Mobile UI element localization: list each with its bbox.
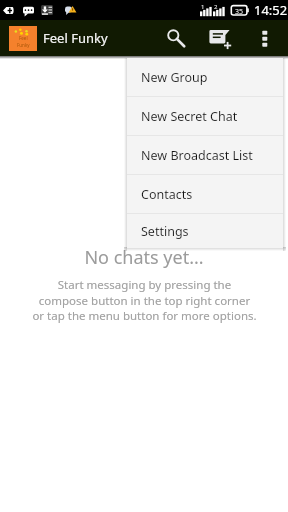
staticText: Start messaging by pressing the compose … — [32, 277, 257, 323]
staticText: No chats yet... — [84, 245, 204, 270]
staticText: Feel Funky — [43, 29, 108, 47]
button[interactable]: New Secret Chat — [127, 97, 283, 135]
button[interactable]: Search — [157, 20, 195, 56]
staticText: Contacts — [141, 186, 193, 203]
staticText: New Group — [141, 69, 208, 86]
staticText: Feel — [19, 35, 28, 41]
staticText: New Broadcast List — [141, 147, 253, 164]
button[interactable]: New Group — [127, 58, 283, 96]
button[interactable]: Settings — [127, 214, 283, 248]
staticText: 35 — [235, 7, 244, 17]
staticText: New Secret Chat — [141, 108, 238, 125]
staticText: Settings — [141, 223, 189, 240]
staticText: 2 — [214, 3, 218, 11]
staticText: 1 — [201, 3, 205, 11]
staticText: 14:52 — [254, 1, 288, 19]
button[interactable]: Contacts — [127, 175, 283, 213]
button[interactable]: New message — [200, 20, 240, 56]
button[interactable]: More options — [248, 20, 280, 56]
button[interactable]: New Broadcast List — [127, 136, 283, 174]
staticText: Funky — [17, 42, 30, 48]
